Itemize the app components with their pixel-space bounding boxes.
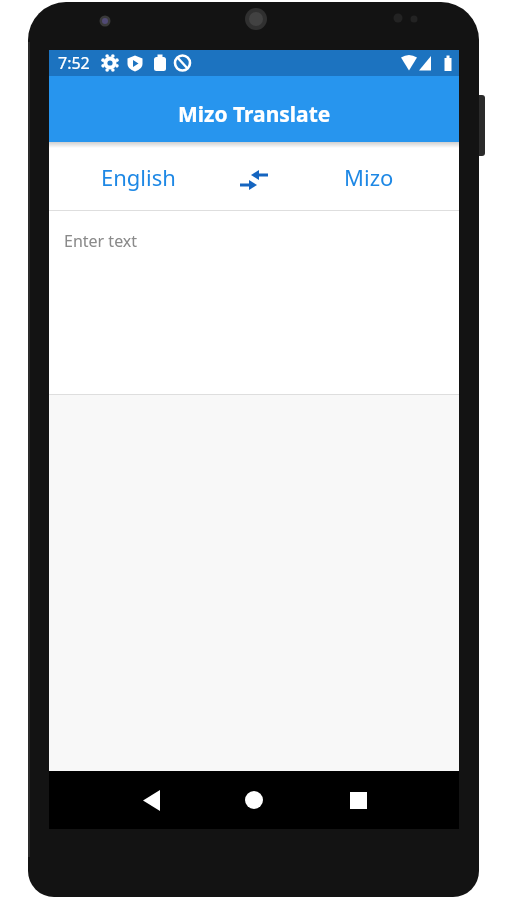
button[interactable] — [224, 150, 284, 206]
staticText: Mizo Translate — [178, 100, 331, 129]
button[interactable] — [328, 785, 388, 815]
staticText: 7:52 — [58, 52, 90, 74]
button[interactable]: Enter text — [49, 211, 459, 394]
button[interactable]: English — [78, 146, 198, 208]
staticText: Enter text — [64, 230, 138, 252]
button[interactable] — [121, 785, 181, 815]
button[interactable]: Mizo — [309, 146, 429, 208]
button[interactable] — [224, 785, 284, 815]
staticText: English — [101, 162, 176, 192]
staticText: Mizo — [344, 162, 394, 192]
